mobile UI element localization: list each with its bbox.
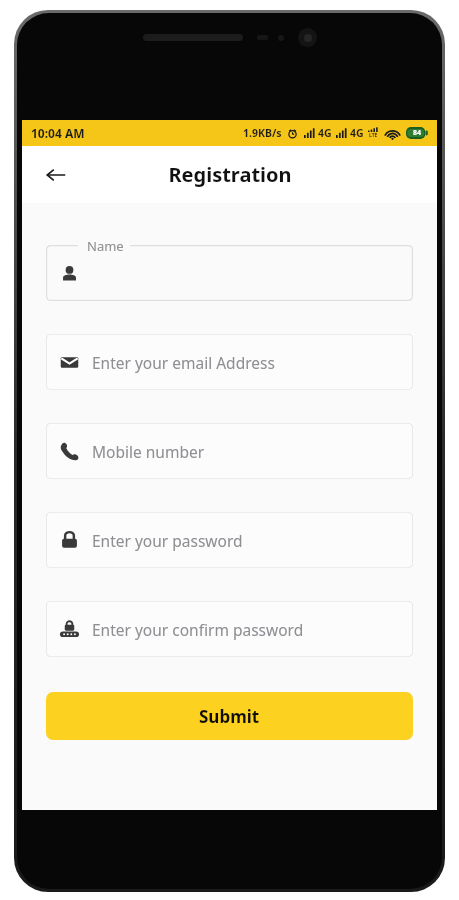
staticText: 4G xyxy=(318,126,332,140)
staticText: 84 xyxy=(413,128,422,138)
other: Name xyxy=(60,264,79,283)
other: Email xyxy=(60,353,79,372)
staticText: Enter your confirm password xyxy=(92,619,304,640)
button[interactable]: Name xyxy=(46,245,413,301)
button[interactable]: Password xyxy=(46,512,413,568)
staticText: 10:04 AM xyxy=(31,125,85,141)
other: Confirm password xyxy=(60,620,79,639)
button[interactable]: Back xyxy=(35,154,77,196)
button[interactable]: Submit xyxy=(46,692,413,740)
staticText: Enter your password xyxy=(92,530,243,551)
other: Mobile number xyxy=(60,442,79,461)
button[interactable]: Confirm password xyxy=(46,601,413,657)
staticText: Name xyxy=(87,237,124,255)
staticText: 1.9KB/s xyxy=(243,126,282,140)
button[interactable]: Email xyxy=(46,334,413,390)
staticText: 4G xyxy=(350,126,364,140)
staticText: LTE xyxy=(369,132,378,139)
other: Password xyxy=(60,531,79,550)
staticText: Registration xyxy=(168,161,292,188)
staticText: Mobile number xyxy=(92,441,205,462)
button[interactable]: Mobile number xyxy=(46,423,413,479)
staticText: Enter your email Address xyxy=(92,352,275,373)
staticText: Submit xyxy=(199,705,260,728)
